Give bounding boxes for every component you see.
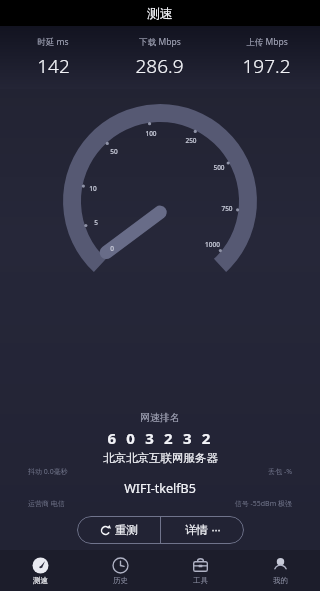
staticText: 下载 Mbps [139,36,181,48]
staticText: ··· [211,522,221,538]
staticText: 50 [110,147,118,156]
staticText: 丢包 -% [160,467,292,477]
staticText: 6 0 3 2 3 2 [107,428,214,448]
staticText: 网速排名 [140,411,180,424]
staticText: 上传 Mbps [246,36,288,48]
other: Retest [100,525,111,536]
staticText: 5 [94,218,98,227]
staticText: 500 [213,163,225,172]
staticText: 142 [37,53,70,79]
staticText: 重测 [115,523,138,537]
staticText: 1000 [205,240,220,249]
staticText: 抖动 0.0毫秒 [28,467,160,477]
staticText: 工具 [193,576,208,585]
staticText: 测速 [33,576,48,585]
staticText: 运营商 电信 [28,499,160,509]
staticText: 750 [221,204,233,213]
staticText: 历史 [113,576,128,585]
button[interactable]: 详情 [161,516,244,544]
staticText: 我的 [273,576,288,585]
staticText: 时延 ms [37,36,69,48]
button[interactable]: 我的 [240,550,320,591]
staticText: 信号 -55dBm 极强 [160,499,292,509]
staticText: 286.9 [135,53,184,79]
button[interactable]: 历史 [80,550,160,591]
staticText: 197.2 [242,53,291,79]
staticText: WIFI-tkelfB5 [124,480,196,497]
button[interactable]: 工具 [160,550,240,591]
staticText: 测速 [147,5,173,21]
staticText: 详情 [185,523,208,537]
staticText: 250 [185,136,197,145]
button[interactable]: Retest [77,516,160,544]
staticText: 100 [145,129,157,138]
staticText: 0 [110,244,114,253]
staticText: 北京北京互联网服务器 [103,451,218,465]
staticText: 10 [89,184,97,193]
button[interactable]: 测速 [0,550,80,591]
